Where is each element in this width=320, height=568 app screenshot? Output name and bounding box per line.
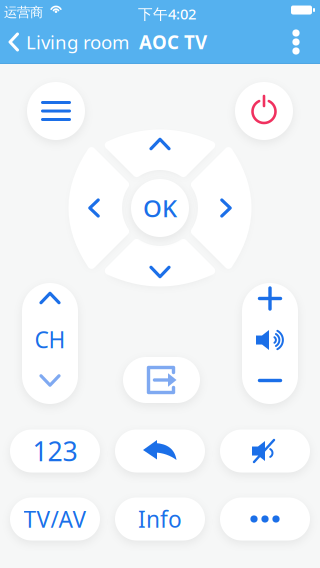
button[interactable]: TV/AV [10,497,100,540]
button[interactable]: Volume [242,283,298,404]
button[interactable]: More [220,497,310,540]
staticText: Living room [26,30,129,54]
button[interactable]: Channel [22,283,78,404]
staticText: TV/AV [23,504,86,534]
button[interactable]: Exit [123,357,200,403]
button[interactable]: More options [287,24,305,60]
staticText: AOC TV [139,30,207,54]
button[interactable]: 123 [10,429,100,472]
staticText: 运营商 [4,4,43,20]
button[interactable]: Left [66,145,134,271]
button[interactable]: Back [8,20,129,64]
button[interactable]: Down [91,233,229,288]
button[interactable]: Mute [220,429,310,472]
staticText: Info [138,504,182,534]
button[interactable]: Info [115,497,205,540]
button[interactable]: OK [131,179,189,237]
button[interactable]: Menu [27,82,85,140]
button[interactable]: Power [235,82,293,140]
staticText: OK [143,192,177,224]
staticText: CH [34,324,65,354]
button[interactable]: Back [115,429,205,472]
button[interactable]: Up [91,128,229,183]
staticText: 下午4:02 [138,4,196,23]
staticText: 123 [32,433,77,469]
button[interactable]: Right [186,145,254,271]
